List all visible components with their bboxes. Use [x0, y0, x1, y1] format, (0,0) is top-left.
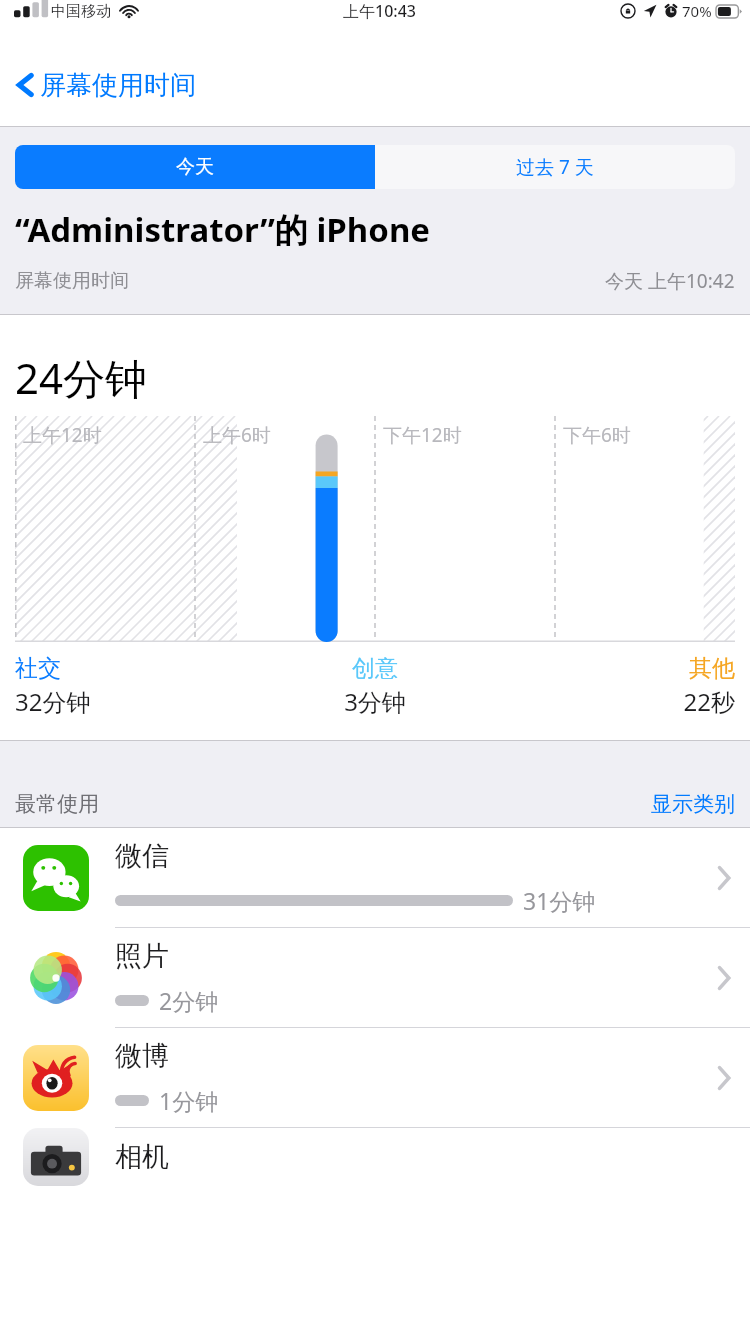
staticText: 照片 — [115, 939, 169, 973]
button[interactable]: 今天 — [15, 145, 374, 189]
staticText: 相机 — [115, 1140, 169, 1174]
other: Back — [14, 68, 36, 102]
staticText: 3分钟 — [255, 685, 495, 718]
staticText: 上午12时 — [23, 422, 102, 448]
button[interactable]: 显示类别 — [651, 791, 735, 817]
staticText: 最常使用 — [15, 791, 99, 817]
button[interactable]: 照片 — [0, 927, 750, 1027]
staticText: 过去 7 天 — [516, 154, 594, 180]
staticText: 22秒 — [495, 685, 735, 718]
staticText: 32分钟 — [15, 685, 255, 718]
button[interactable]: Back — [0, 44, 750, 126]
button[interactable]: 过去 7 天 — [375, 145, 735, 189]
staticText: 创意 — [255, 654, 495, 683]
staticText: 屏幕使用时间 — [15, 269, 129, 293]
staticText: 其他 — [495, 654, 735, 683]
button[interactable]: 微博 — [0, 1027, 750, 1127]
staticText: 31分钟 — [523, 885, 596, 916]
staticText: 下午6时 — [563, 422, 631, 448]
button[interactable]: 相机 — [0, 1127, 750, 1186]
staticText: 上午10:43 — [343, 0, 416, 22]
other: More about 微信 — [716, 864, 732, 892]
staticText: “Administrator”的 iPhone — [15, 207, 431, 252]
staticText: 微博 — [115, 1039, 169, 1073]
staticText: 70% — [682, 1, 712, 21]
other: More about 照片 — [716, 964, 732, 992]
staticText: 1分钟 — [159, 1085, 219, 1116]
staticText: 中国移动 — [51, 2, 111, 21]
staticText: 显示类别 — [651, 791, 735, 817]
other: More about 微博 — [716, 1064, 732, 1092]
button[interactable]: 创意 — [255, 654, 495, 718]
staticText: 社交 — [15, 654, 255, 683]
staticText: 上午6时 — [203, 422, 271, 448]
button[interactable]: 社交 — [15, 654, 255, 718]
staticText: 今天 上午10:42 — [605, 268, 735, 294]
button[interactable]: 其他 — [495, 654, 735, 718]
staticText: 今天 — [176, 155, 214, 179]
staticText: 下午12时 — [383, 422, 462, 448]
staticText: 24分钟 — [15, 349, 148, 406]
staticText: 微信 — [115, 839, 169, 873]
staticText: 2分钟 — [159, 985, 219, 1016]
button[interactable]: 微信 — [0, 828, 750, 927]
staticText: 屏幕使用时间 — [40, 69, 196, 102]
